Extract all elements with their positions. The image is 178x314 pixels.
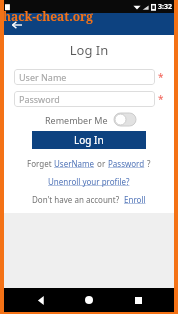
staticText: Log In bbox=[74, 133, 104, 147]
staticText: Forget bbox=[27, 158, 54, 169]
button[interactable]: Back bbox=[29, 288, 53, 312]
button[interactable]: Back bbox=[9, 17, 25, 33]
staticText: hack-cheat.org bbox=[3, 8, 94, 24]
button[interactable]: Unenroll your profile? bbox=[48, 176, 130, 187]
staticText: Password bbox=[19, 93, 60, 105]
staticText: Password bbox=[108, 158, 145, 169]
button[interactable]: Log In bbox=[32, 131, 146, 149]
button[interactable]: Password bbox=[108, 158, 145, 169]
staticText: 3:32 bbox=[158, 2, 172, 12]
staticText: Log In bbox=[4, 41, 174, 59]
button[interactable]: Remember Me bbox=[45, 113, 136, 126]
button[interactable]: Enroll bbox=[124, 194, 146, 205]
button[interactable]: User Name bbox=[14, 69, 155, 85]
staticText: Remember Me bbox=[45, 114, 108, 126]
staticText: * bbox=[158, 70, 164, 84]
staticText: or bbox=[95, 158, 108, 169]
staticText: Don't have an account? bbox=[32, 194, 124, 205]
staticText: User Name bbox=[19, 71, 67, 83]
button[interactable]: Password bbox=[14, 91, 155, 107]
button[interactable]: UserName bbox=[54, 158, 95, 169]
staticText: * bbox=[158, 92, 164, 106]
button[interactable]: Home bbox=[77, 288, 101, 312]
staticText: Unenroll your profile? bbox=[48, 176, 130, 187]
staticText: UserName bbox=[54, 158, 95, 169]
staticText: Enroll bbox=[124, 194, 146, 205]
button[interactable]: Recents bbox=[126, 288, 150, 312]
staticText: ? bbox=[145, 158, 151, 169]
